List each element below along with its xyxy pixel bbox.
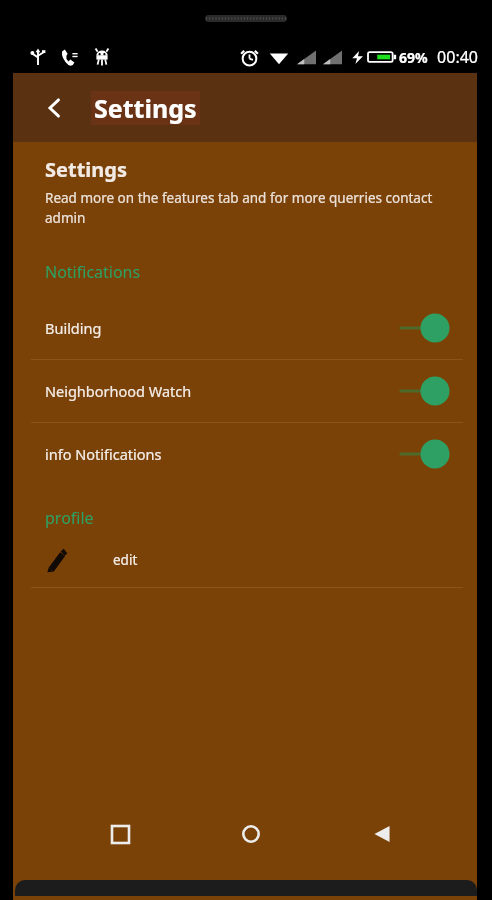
staticText: 00:40 (437, 46, 478, 68)
staticText: profile (45, 507, 94, 529)
staticText: Settings (45, 156, 127, 183)
staticText: Settings (94, 91, 197, 125)
staticText: Neighborhood Watch (45, 381, 192, 401)
button[interactable]: Back (358, 810, 406, 858)
staticText: Building (45, 318, 102, 338)
staticText: info Notifications (45, 444, 162, 464)
staticText: edit (113, 551, 138, 569)
staticText: 69% (399, 48, 428, 67)
staticText: Read more on the features tab and for mo… (45, 189, 437, 227)
staticText: Notifications (45, 261, 141, 283)
button[interactable]: edit (13, 539, 477, 581)
button[interactable]: Building (13, 297, 477, 359)
button[interactable]: info Notifications (13, 423, 477, 485)
button[interactable]: Neighborhood Watch (13, 360, 477, 422)
button[interactable]: Back (35, 88, 75, 128)
button[interactable]: Home (227, 810, 275, 858)
button[interactable]: Recent apps (96, 810, 144, 858)
